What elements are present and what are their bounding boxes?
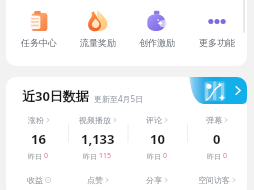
button[interactable]: 创作激励	[127, 0, 187, 48]
button[interactable]: 涨粉	[9, 115, 68, 161]
staticText: 昨日	[28, 152, 42, 161]
staticText: 0	[44, 151, 49, 161]
staticText: 16	[31, 130, 46, 148]
staticText: 分享	[146, 175, 162, 185]
staticText: 视频播放	[79, 115, 111, 125]
staticText: 近30日数据	[22, 87, 89, 105]
button[interactable]: 分享	[127, 175, 187, 185]
staticText: 流量奖励	[80, 37, 116, 48]
button[interactable]: 任务中心	[9, 0, 68, 48]
button[interactable]: 收益	[9, 175, 68, 185]
staticText: 昨日	[147, 152, 161, 161]
staticText: 昨日	[83, 152, 97, 161]
button[interactable]: 更多功能	[187, 0, 247, 48]
staticText: 涨粉	[28, 115, 44, 125]
staticText: 0	[163, 151, 168, 161]
staticText: 收益	[27, 175, 43, 185]
button[interactable]: 视频播放	[68, 115, 127, 161]
button[interactable]: 空间访客	[187, 175, 247, 185]
button[interactable]: 数据详情	[187, 77, 247, 104]
staticText: 空间访客	[198, 175, 230, 185]
staticText: 更多功能	[199, 37, 235, 48]
staticText: 10	[150, 130, 165, 148]
staticText: 昨日	[207, 152, 221, 161]
staticText: 评论	[146, 115, 162, 125]
staticText: 1,133	[81, 130, 115, 148]
staticText: 0	[223, 151, 228, 161]
button[interactable]: 弹幕	[187, 115, 247, 161]
button[interactable]: 点赞	[68, 175, 127, 185]
staticText: 弹幕	[206, 115, 222, 125]
staticText: 任务中心	[21, 37, 57, 48]
staticText: 115	[99, 151, 112, 161]
button[interactable]: 评论	[127, 115, 187, 161]
button[interactable]: 流量奖励	[68, 0, 127, 48]
staticText: 创作激励	[139, 37, 175, 48]
staticText: 点赞	[87, 175, 103, 185]
staticText: 更新至4月5日	[94, 93, 144, 104]
staticText: 0	[213, 130, 221, 148]
